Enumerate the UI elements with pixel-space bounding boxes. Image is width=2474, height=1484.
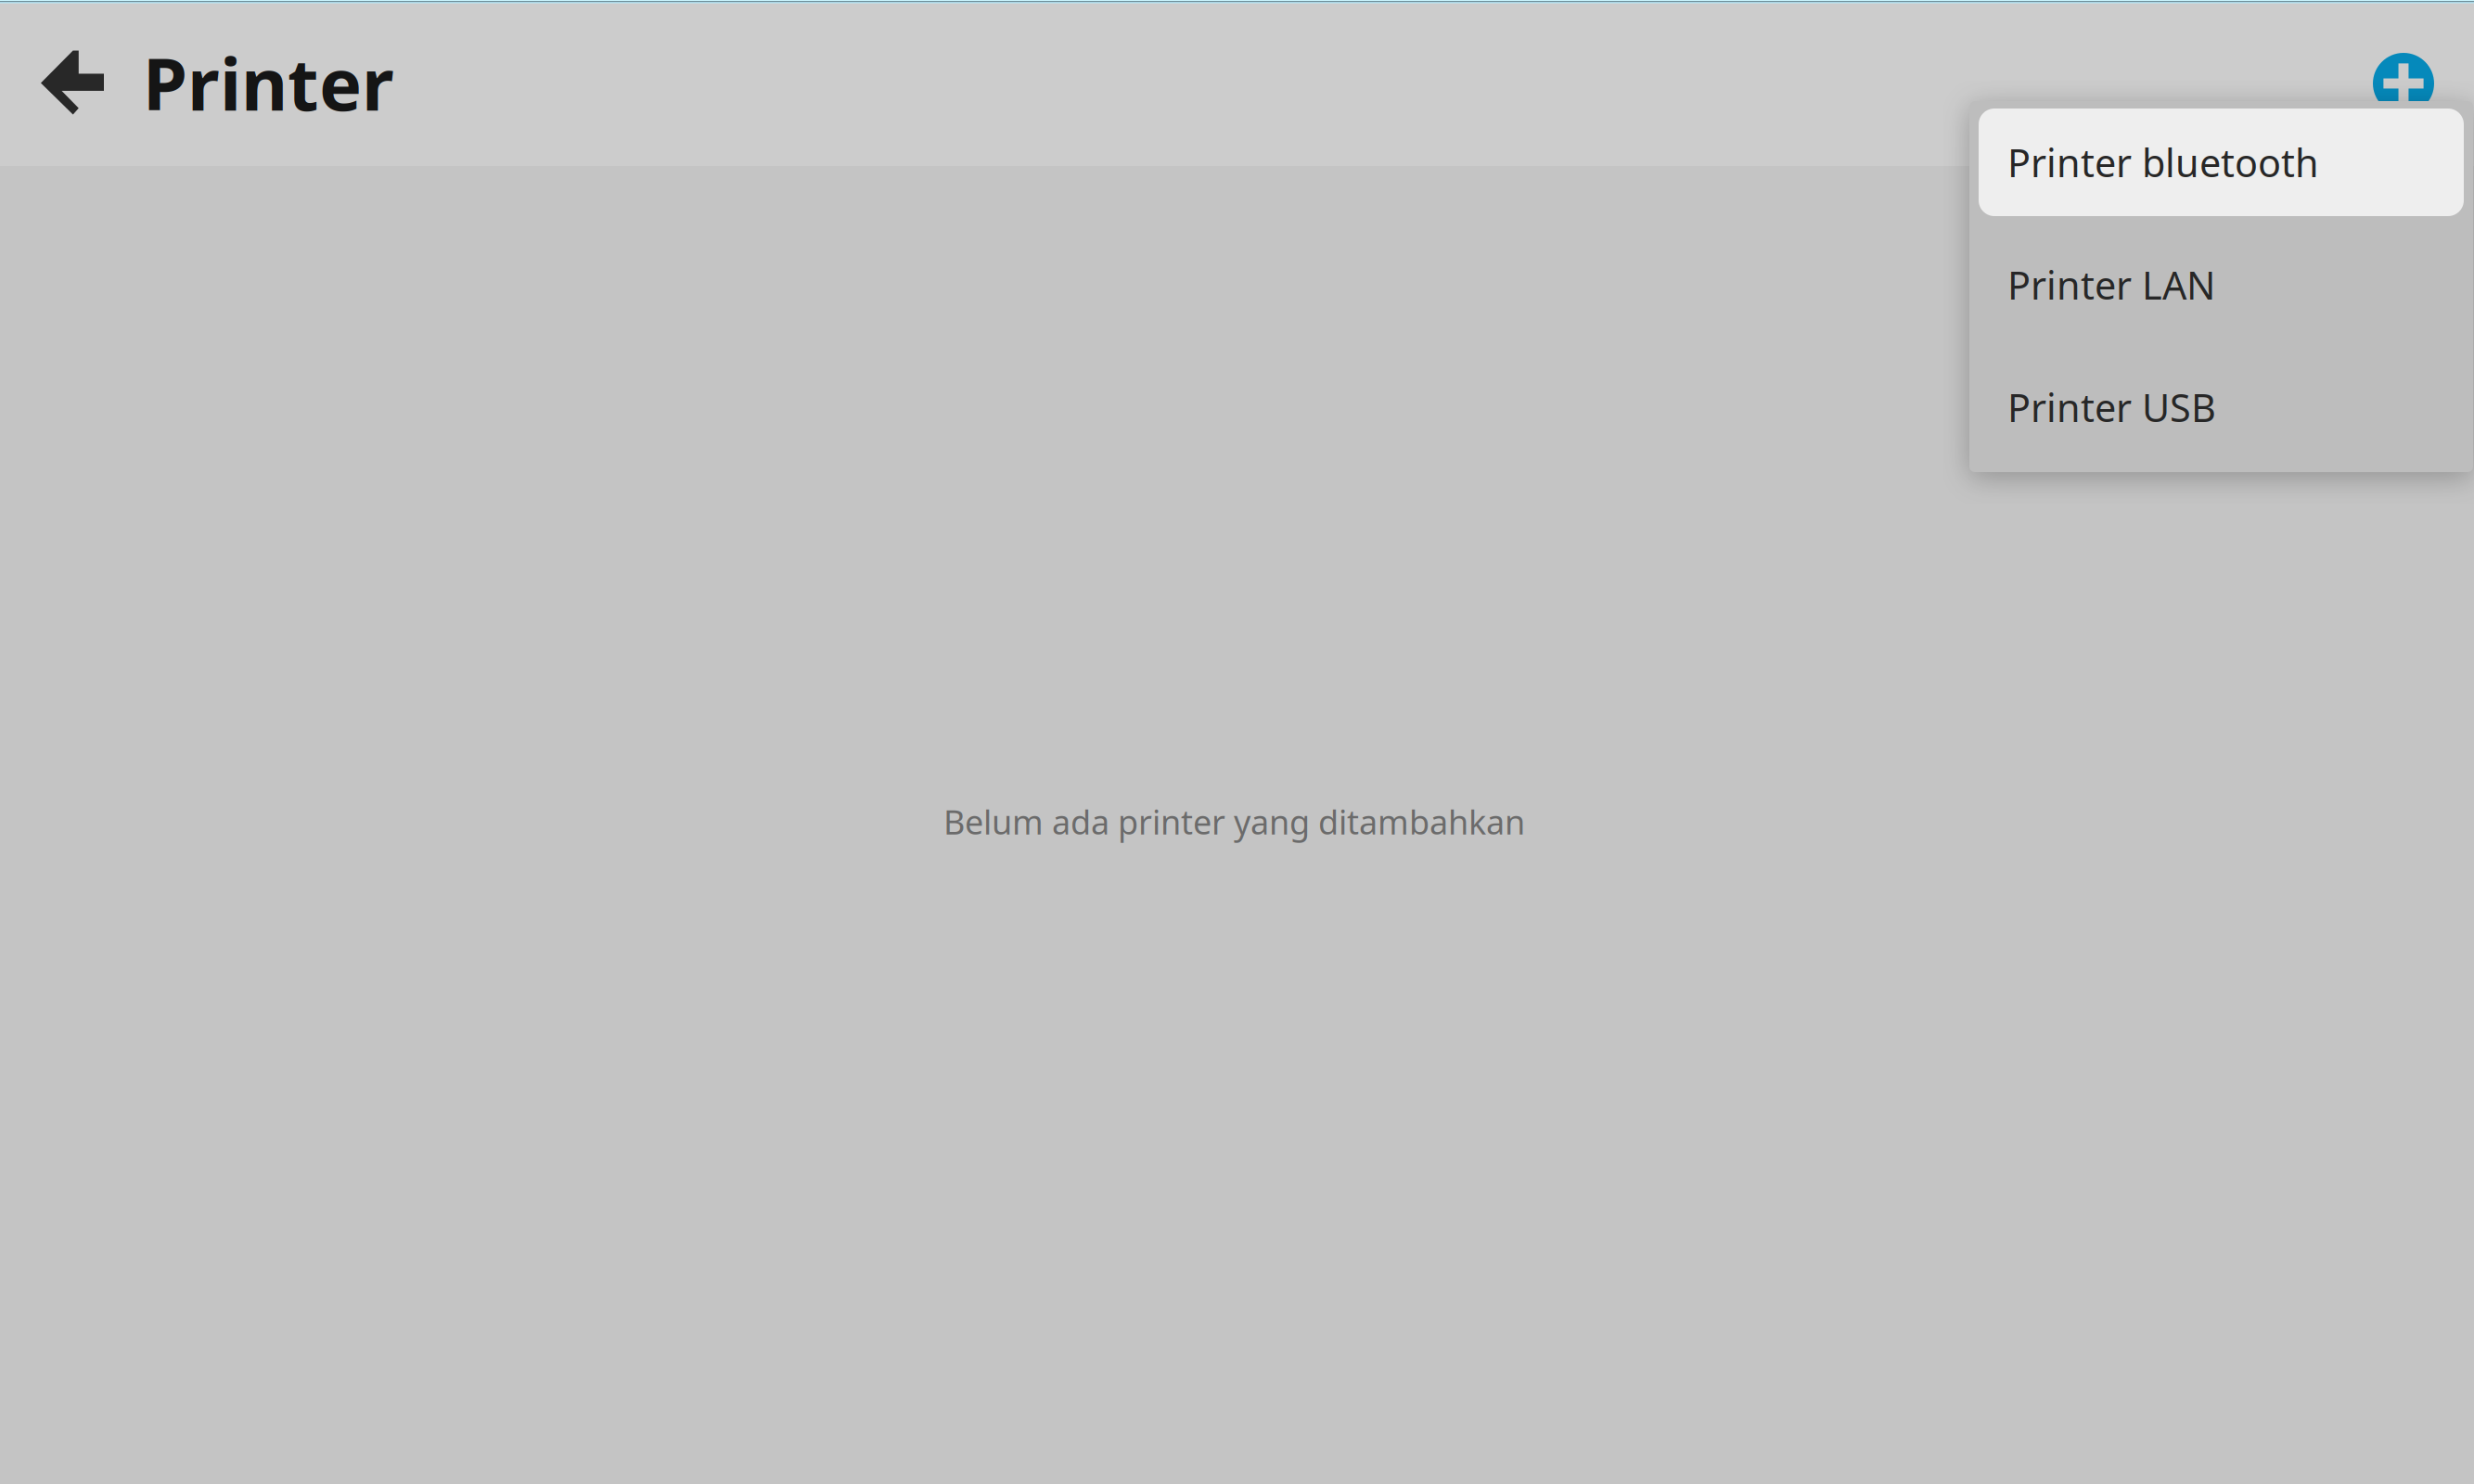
button[interactable]: Back (13, 23, 132, 142)
staticText: Printer (143, 35, 394, 130)
staticText: Printer LAN (2007, 259, 2215, 310)
button[interactable]: Add printer (2361, 41, 2446, 126)
staticText: Belum ada printer yang ditambahkan (943, 800, 1525, 844)
staticText: Printer USB (2007, 382, 2216, 433)
button[interactable]: Printer USB (1969, 346, 2473, 468)
button[interactable]: Printer LAN (1969, 224, 2473, 346)
button[interactable]: Printer bluetooth (1969, 101, 2473, 224)
staticText: Printer bluetooth (2007, 137, 2319, 188)
